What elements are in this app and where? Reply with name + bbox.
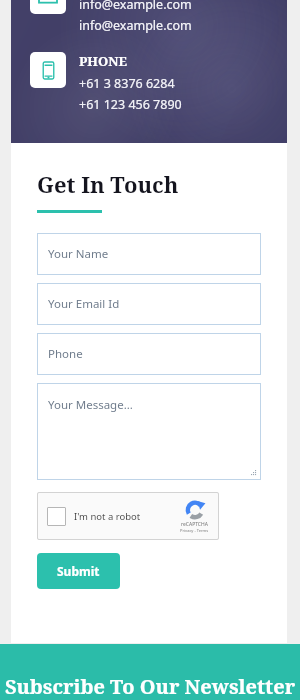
- button[interactable]: Phone: [37, 333, 261, 375]
- button[interactable]: PHONE: [30, 52, 300, 113]
- staticText: +61 123 456 7890: [79, 96, 182, 113]
- staticText: +61 3 8376 6284: [79, 75, 175, 92]
- staticText: Your Message...: [48, 397, 133, 413]
- staticText: Submit: [57, 563, 100, 579]
- staticText: reCAPTCHA: [181, 521, 208, 528]
- button[interactable]: Your Name: [37, 233, 261, 275]
- button[interactable]: info@example.com: [30, 0, 300, 16]
- staticText: Subscribe To Our Newsletter: [0, 673, 300, 700]
- button[interactable]: Submit: [37, 553, 120, 589]
- staticText: info@example.com: [79, 0, 192, 13]
- staticText: info@example.com: [79, 17, 192, 34]
- staticText: I'm not a robot: [74, 510, 141, 523]
- button[interactable]: I'm not a robot checkbox: [37, 492, 219, 540]
- button[interactable]: I'm not a robot checkbox: [47, 507, 66, 526]
- staticText: Privacy - Terms: [180, 528, 209, 533]
- staticText: Phone: [48, 346, 83, 362]
- button[interactable]: Your Email Id: [37, 283, 261, 325]
- staticText: Your Email Id: [48, 296, 120, 312]
- button[interactable]: Your Message...: [37, 383, 261, 480]
- staticText: Get In Touch: [37, 169, 179, 199]
- staticText: Your Name: [48, 246, 109, 262]
- staticText: PHONE: [79, 52, 127, 70]
